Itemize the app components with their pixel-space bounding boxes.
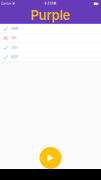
button[interactable]: DARK: [0, 24, 101, 33]
button[interactable]: Play: [39, 147, 61, 169]
staticText: Carrier: [1, 2, 11, 5]
staticText: CAP: [10, 36, 16, 40]
staticText: CAST: [10, 46, 18, 49]
staticText: BOOT: [10, 55, 18, 59]
staticText: 9:31 PM: [44, 2, 56, 5]
staticText: DARK: [10, 27, 18, 30]
button[interactable]: BOOT: [0, 52, 101, 62]
staticText: Purple: [30, 8, 70, 23]
button[interactable]: CAP: [0, 33, 101, 43]
button[interactable]: CAST: [0, 43, 101, 52]
